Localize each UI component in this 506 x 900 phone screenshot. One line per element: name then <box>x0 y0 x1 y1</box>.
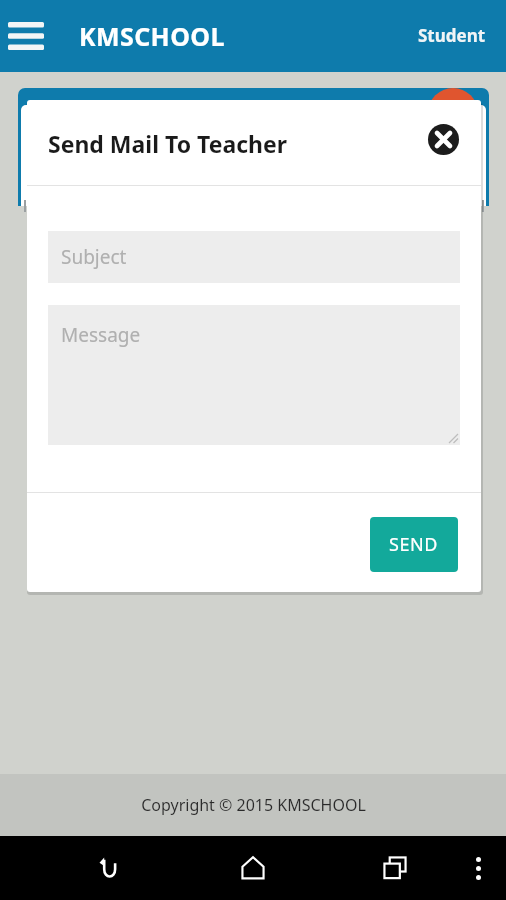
staticText: Subject <box>61 244 127 270</box>
button[interactable]: Home <box>223 836 283 900</box>
button[interactable]: More options <box>456 836 500 900</box>
staticText: Student <box>418 24 486 47</box>
button[interactable]: Student <box>398 14 506 57</box>
button[interactable]: Back <box>82 836 142 900</box>
staticText: KMSCHOOL <box>79 19 225 53</box>
staticText: SEND <box>389 532 439 557</box>
staticText: Copyright © 2015 KMSCHOOL <box>141 794 366 816</box>
button[interactable]: Open navigation menu <box>0 10 52 62</box>
button[interactable]: Recent apps <box>365 836 425 900</box>
button[interactable]: Close dialog <box>425 121 461 157</box>
staticText: Send Mail To Teacher <box>48 128 288 159</box>
button[interactable]: SEND <box>370 517 458 572</box>
button[interactable]: Subject <box>48 231 460 283</box>
button[interactable]: Message <box>48 305 460 445</box>
staticText: Message <box>61 322 141 348</box>
